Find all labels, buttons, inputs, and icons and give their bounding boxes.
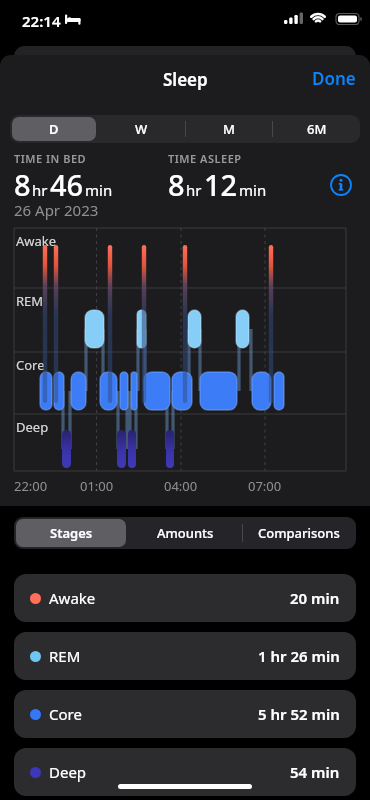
- staticText: Amounts: [157, 524, 214, 542]
- button[interactable]: Comparisons: [242, 517, 356, 549]
- staticText: 20 min: [290, 588, 340, 608]
- staticText: 26 Apr 2023: [14, 200, 99, 220]
- staticText: 01:00: [80, 477, 114, 495]
- button[interactable]: D: [10, 115, 97, 143]
- staticText: 5 hr 52 min: [258, 704, 340, 724]
- staticText: Stages: [50, 524, 93, 542]
- staticText: hr: [186, 180, 202, 200]
- staticText: M: [223, 120, 235, 138]
- staticText: Core: [49, 704, 82, 724]
- staticText: 6M: [307, 120, 327, 138]
- staticText: Done: [312, 67, 356, 90]
- staticText: 07:00: [248, 477, 282, 495]
- button[interactable]: Awake: [14, 574, 356, 622]
- staticText: Deep: [16, 418, 49, 436]
- staticText: Awake: [49, 588, 96, 608]
- staticText: Core: [16, 356, 45, 374]
- staticText: D: [49, 120, 59, 138]
- button[interactable]: W: [98, 115, 185, 143]
- staticText: Comparisons: [258, 524, 340, 542]
- staticText: min: [85, 180, 113, 200]
- staticText: Awake: [16, 232, 57, 250]
- button[interactable]: [330, 174, 352, 196]
- button[interactable]: Stages: [14, 517, 128, 549]
- staticText: 54 min: [290, 762, 340, 782]
- staticText: hr: [32, 180, 48, 200]
- staticText: 12: [204, 165, 238, 204]
- staticText: REM: [49, 646, 81, 666]
- button[interactable]: Core: [14, 690, 356, 738]
- button[interactable]: Deep: [14, 748, 356, 796]
- staticText: TIME IN BED: [14, 151, 87, 166]
- button[interactable]: Amounts: [128, 517, 242, 549]
- staticText: 1 hr 26 min: [258, 646, 340, 666]
- staticText: Deep: [49, 762, 87, 782]
- staticText: 22:00: [14, 477, 48, 495]
- staticText: Sleep: [163, 68, 208, 91]
- staticText: W: [135, 120, 148, 138]
- staticText: TIME ASLEEP: [168, 151, 242, 166]
- staticText: 46: [50, 165, 84, 204]
- staticText: min: [239, 180, 267, 200]
- staticText: 8: [14, 165, 31, 204]
- staticText: 22:14: [22, 11, 61, 31]
- button[interactable]: Done: [304, 62, 364, 94]
- staticText: REM: [16, 292, 44, 310]
- button[interactable]: 6M: [273, 115, 360, 143]
- staticText: 8: [168, 165, 185, 204]
- button[interactable]: REM: [14, 632, 356, 680]
- staticText: 04:00: [164, 477, 198, 495]
- button[interactable]: M: [185, 115, 272, 143]
